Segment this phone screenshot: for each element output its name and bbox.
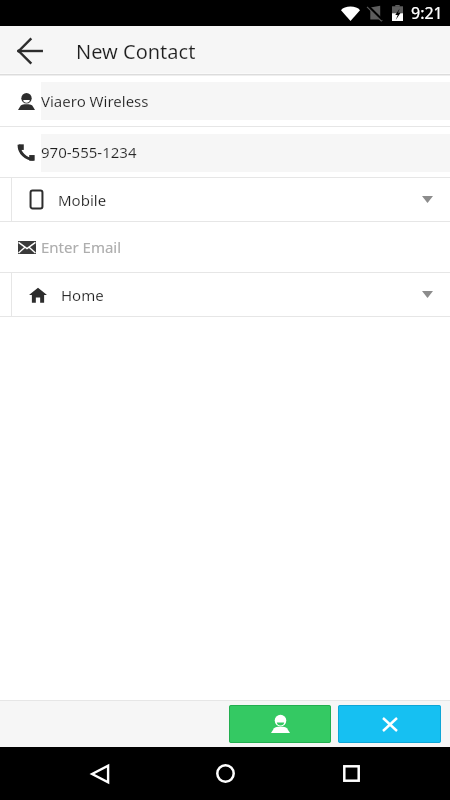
button[interactable]: 970-555-1234: [0, 127, 450, 177]
button[interactable]: Save contact: [229, 705, 331, 743]
button[interactable]: Home: [193, 747, 257, 800]
button[interactable]: Recents: [319, 747, 383, 800]
staticText: Mobile: [58, 190, 107, 210]
button[interactable]: Enter Email: [0, 222, 450, 272]
button[interactable]: Cancel: [338, 705, 441, 743]
button[interactable]: Back: [68, 747, 132, 800]
button[interactable]: Home: [0, 273, 450, 316]
button[interactable]: Mobile: [0, 178, 450, 221]
button[interactable]: Back: [0, 26, 59, 76]
staticText: 9:21: [411, 2, 443, 24]
staticText: Home: [61, 285, 104, 305]
staticText: Viaero Wireless: [41, 91, 149, 111]
staticText: New Contact: [76, 38, 196, 65]
staticText: Enter Email: [41, 237, 122, 257]
button[interactable]: Viaero Wireless: [0, 76, 450, 126]
staticText: 970-555-1234: [41, 142, 137, 162]
